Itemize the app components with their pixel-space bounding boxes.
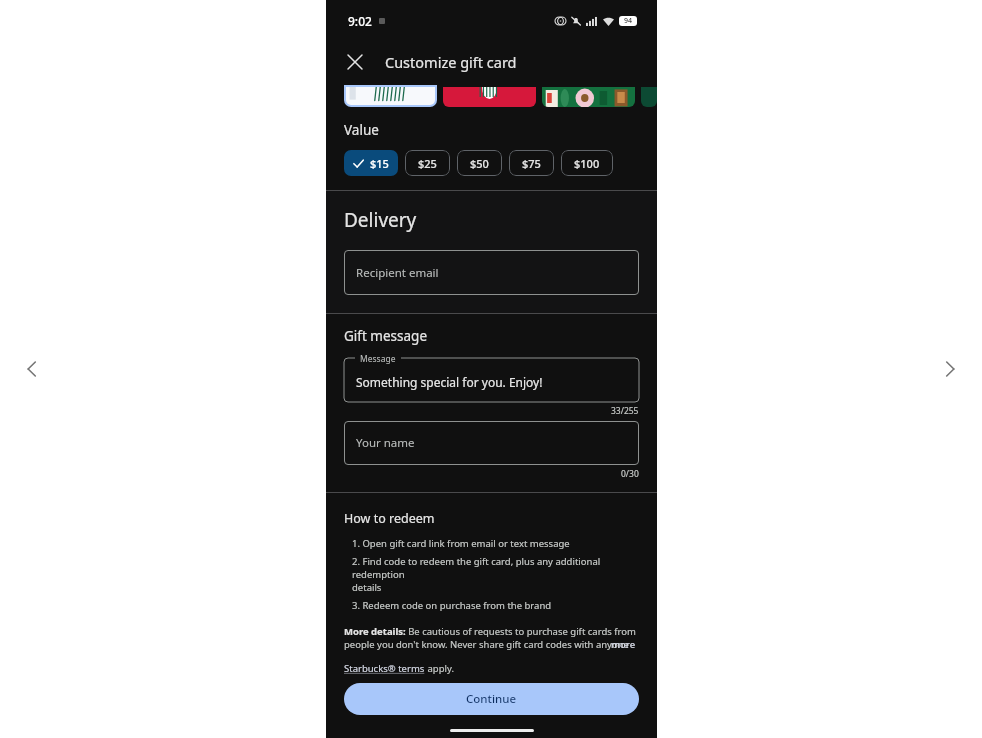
staticText: Continue <box>466 691 517 707</box>
button[interactable]: Starbucks® terms <box>344 662 425 675</box>
button[interactable] <box>443 87 536 107</box>
staticText: 33/255 <box>611 405 639 417</box>
staticText: 9:02 <box>348 13 372 29</box>
staticText: $25 <box>418 156 437 171</box>
button[interactable]: Next <box>936 355 964 383</box>
staticText: $100 <box>574 156 600 171</box>
staticText: $75 <box>522 156 541 171</box>
button[interactable] <box>641 87 657 107</box>
button[interactable]: $50 <box>457 150 502 176</box>
staticText: Something special for you. Enjoy! <box>356 374 543 390</box>
button[interactable]: $75 <box>509 150 554 176</box>
button[interactable]: Your name <box>344 421 639 465</box>
staticText: 0/30 <box>621 468 639 480</box>
staticText: apply. <box>425 662 454 675</box>
staticText: details <box>352 581 382 594</box>
staticText: Starbucks® terms <box>344 662 425 675</box>
staticText: How to redeem <box>344 510 435 527</box>
staticText: 2. Find code to redeem the gift card, pl… <box>352 555 639 581</box>
button[interactable] <box>346 87 435 105</box>
button[interactable]: Previous <box>18 355 46 383</box>
staticText: Value <box>344 121 379 139</box>
button[interactable]: Close <box>340 47 370 77</box>
staticText: Gift message <box>344 327 427 345</box>
staticText: Message <box>360 353 396 365</box>
staticText: $50 <box>470 156 489 171</box>
staticText: Customize gift card <box>385 52 517 72</box>
staticText: Your name <box>356 435 415 451</box>
button[interactable]: more <box>611 638 636 651</box>
button[interactable]: Recipient email <box>344 250 639 295</box>
button[interactable]: $100 <box>561 150 613 176</box>
button[interactable] <box>542 87 635 107</box>
staticText: $15 <box>370 156 389 171</box>
button[interactable]: $25 <box>405 150 450 176</box>
staticText: More details: Be cautious of requests to… <box>344 625 636 638</box>
staticText: 3. Redeem code on purchase from the bran… <box>352 599 552 612</box>
staticText: Delivery <box>344 207 417 233</box>
staticText: more <box>611 638 636 651</box>
staticText: 1. Open gift card link from email or tex… <box>352 537 570 550</box>
button[interactable]: $15 <box>344 150 398 176</box>
staticText: 94 <box>624 16 633 26</box>
staticText: Recipient email <box>356 265 439 281</box>
staticText: people you don't know. Never share gift … <box>344 638 629 651</box>
button[interactable]: Continue <box>344 683 639 715</box>
